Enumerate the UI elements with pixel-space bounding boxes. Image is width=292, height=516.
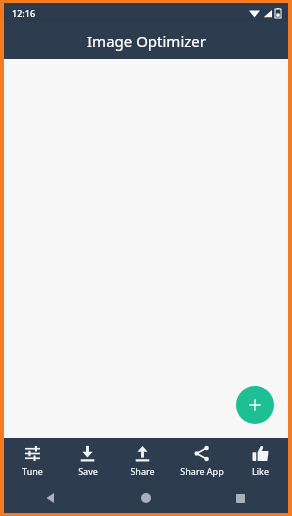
button[interactable]: Recent apps <box>193 483 288 513</box>
button[interactable]: Share App <box>170 438 233 483</box>
staticText: Image Optimizer <box>87 31 206 51</box>
staticText: 12:16 <box>12 7 36 19</box>
button[interactable]: Share <box>115 438 170 483</box>
button[interactable]: Add image <box>236 386 274 424</box>
staticText: Tune <box>22 465 43 477</box>
button[interactable]: Home <box>98 483 193 513</box>
staticText: Like <box>252 465 269 477</box>
button[interactable]: Tune <box>4 438 60 483</box>
staticText: Share <box>130 465 155 477</box>
button[interactable]: Save <box>60 438 115 483</box>
button[interactable]: Back <box>4 483 98 513</box>
button[interactable]: Like <box>233 438 288 483</box>
staticText: Save <box>78 465 98 477</box>
staticText: Share App <box>180 465 224 477</box>
